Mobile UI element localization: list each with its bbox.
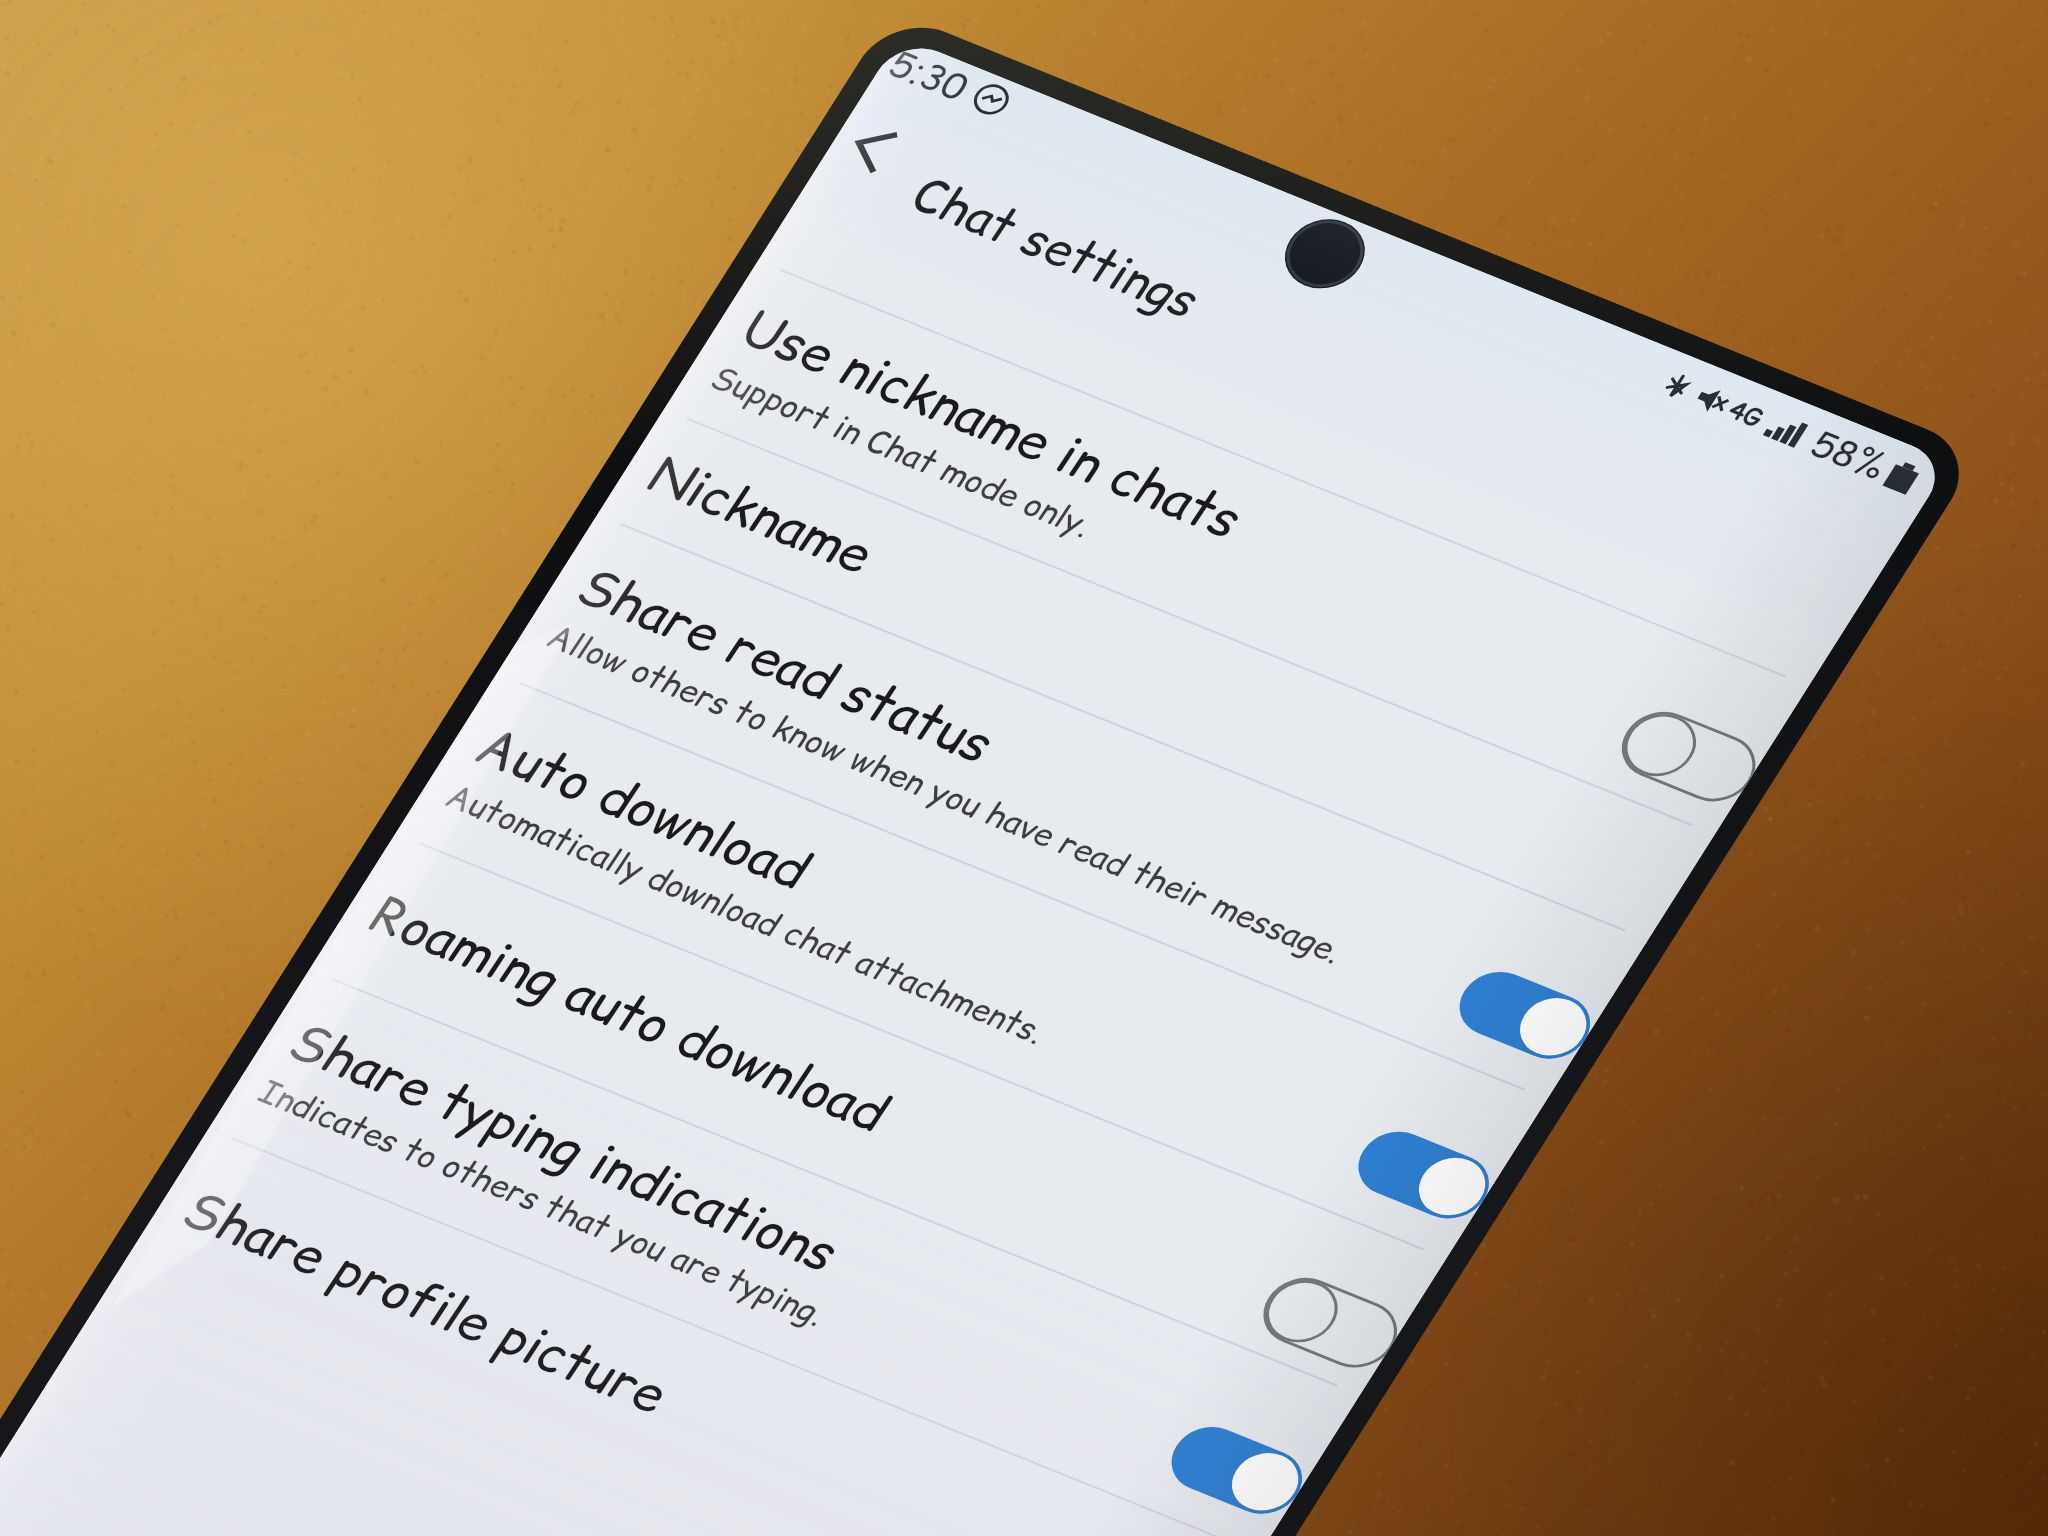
staticText: Allow others to know when you have read … — [529, 411, 1362, 1177]
staticText: 58% — [1791, 402, 1908, 509]
staticText: Auto download — [448, 628, 840, 988]
staticText: Roaming auto download — [342, 748, 918, 1278]
button[interactable]: Auto download — [358, 401, 1586, 1529]
button[interactable]: Share profile picture — [90, 856, 1292, 1536]
button[interactable]: On — [1051, 1533, 1236, 1536]
staticText: Share profile picture — [155, 1052, 698, 1536]
button[interactable]: Share read status — [459, 242, 1686, 1370]
staticText: 5:30 — [869, 21, 988, 130]
button[interactable]: Off — [1596, 672, 1781, 841]
staticText: Support in Chat mode only. — [693, 259, 1112, 643]
staticText: Share read status — [549, 447, 1024, 883]
staticText: Chat settings — [886, 91, 1228, 404]
staticText: Automatically download chat attachments. — [428, 621, 1065, 1207]
staticText: Use nickname in chats — [713, 167, 1272, 680]
button[interactable]: Roaming auto download — [277, 561, 1479, 1536]
button[interactable]: On — [1331, 1090, 1516, 1260]
button[interactable]: On — [1144, 1386, 1329, 1536]
staticText: Share typing indications — [261, 868, 868, 1426]
button[interactable]: Use nickname in chats — [629, 0, 1844, 1105]
button[interactable]: Back — [821, 101, 924, 195]
staticText: Indicates to others that you are typing. — [241, 925, 845, 1480]
staticText: 4G — [1715, 385, 1777, 442]
button[interactable]: Nickname — [573, 137, 1740, 1211]
button[interactable]: Share typing indications — [171, 697, 1398, 1536]
button[interactable]: On — [1432, 930, 1617, 1100]
staticText: Nickname — [620, 385, 903, 644]
button[interactable]: Off — [1238, 1238, 1423, 1408]
